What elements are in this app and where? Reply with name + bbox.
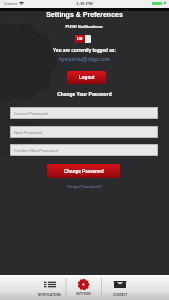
button[interactable]: Current Password xyxy=(14,108,154,118)
staticText: Current Password xyxy=(14,111,48,116)
staticText: You are currently logged as: xyxy=(0,48,169,53)
button[interactable]: New Password xyxy=(14,127,154,137)
staticText: hyenumtu@citgo.com xyxy=(0,56,169,62)
staticText: CONTACT xyxy=(113,293,128,296)
button[interactable]: Logout xyxy=(67,71,106,84)
staticText: SETTINGS xyxy=(76,292,92,295)
staticText: Change Password xyxy=(64,169,104,174)
button[interactable]: Change Password xyxy=(47,164,120,178)
staticText: Confirm New Password xyxy=(14,148,58,153)
staticText: PUSH Notifications: xyxy=(0,24,169,28)
staticText: Change Your Password xyxy=(0,92,169,97)
button[interactable]: NOTIFICATIONS xyxy=(32,275,67,300)
staticText: Forgot Password? xyxy=(0,184,169,189)
staticText: Carrier xyxy=(4,1,18,6)
staticText: 1:36 PM xyxy=(76,1,93,6)
button[interactable]: Confirm New Password xyxy=(14,145,154,155)
staticText: Settings & Preferences xyxy=(0,11,169,19)
button[interactable]: CONTACT xyxy=(102,275,138,300)
button[interactable]: Push notifications on xyxy=(75,35,91,43)
button[interactable]: SETTINGS xyxy=(66,275,101,300)
staticText: ON xyxy=(77,37,83,41)
staticText: NOTIFICATIONS xyxy=(38,293,62,296)
staticText: New Password xyxy=(14,130,42,135)
staticText: Logout xyxy=(79,75,95,80)
